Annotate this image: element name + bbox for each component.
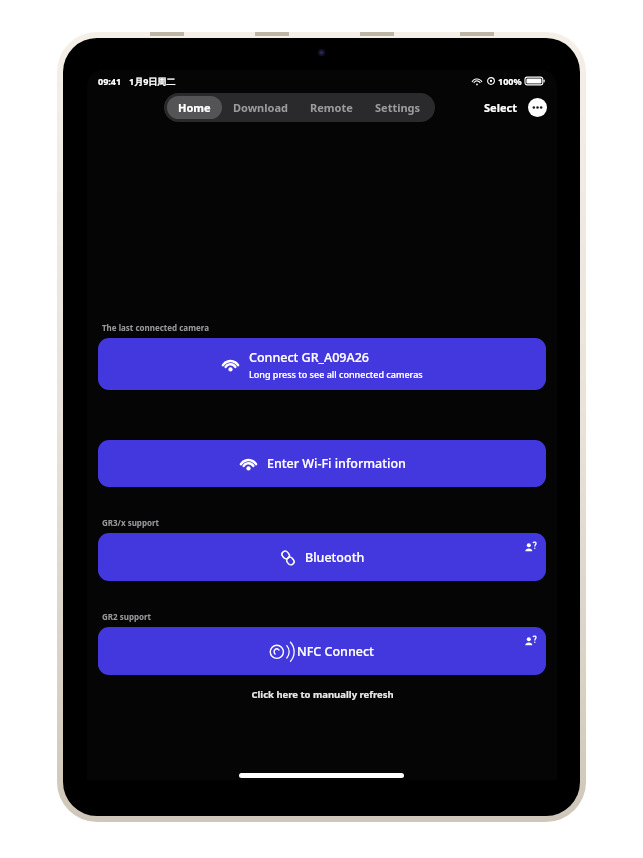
- button[interactable]: More options: [528, 98, 547, 117]
- staticText: NFC Connect: [297, 643, 374, 660]
- button[interactable]: Help: [522, 633, 538, 649]
- staticText: Select: [484, 100, 517, 115]
- button[interactable]: Home: [167, 96, 222, 119]
- staticText: Remote: [310, 100, 353, 115]
- button[interactable]: Settings: [364, 96, 432, 119]
- staticText: Settings: [375, 100, 421, 115]
- button[interactable]: Bluetooth: [98, 533, 546, 581]
- button[interactable]: Select: [481, 97, 520, 118]
- staticText: 09:41: [98, 75, 122, 87]
- staticText: Long press to see all connected cameras: [249, 368, 423, 380]
- button[interactable]: NFC Connect: [98, 627, 546, 675]
- button[interactable]: Enter Wi-Fi information: [98, 440, 546, 487]
- staticText: Home: [178, 100, 211, 115]
- staticText: GR3/x support: [102, 517, 160, 528]
- staticText: Connect GR_A09A26: [249, 349, 369, 366]
- button[interactable]: Connect GR_A09A26: [98, 338, 546, 390]
- staticText: The last connected camera: [102, 322, 209, 333]
- button[interactable]: Download: [222, 96, 299, 119]
- staticText: 100%: [498, 75, 522, 87]
- button[interactable]: Help: [522, 539, 538, 555]
- button[interactable]: Remote: [299, 96, 364, 119]
- staticText: GR2 support: [102, 611, 152, 622]
- staticText: Click here to manually refresh: [251, 688, 394, 701]
- staticText: 1月9日周二: [129, 75, 176, 87]
- staticText: Enter Wi-Fi information: [267, 455, 406, 472]
- button[interactable]: Click here to manually refresh: [98, 684, 546, 705]
- staticText: Download: [233, 100, 288, 115]
- staticText: Bluetooth: [305, 549, 365, 566]
